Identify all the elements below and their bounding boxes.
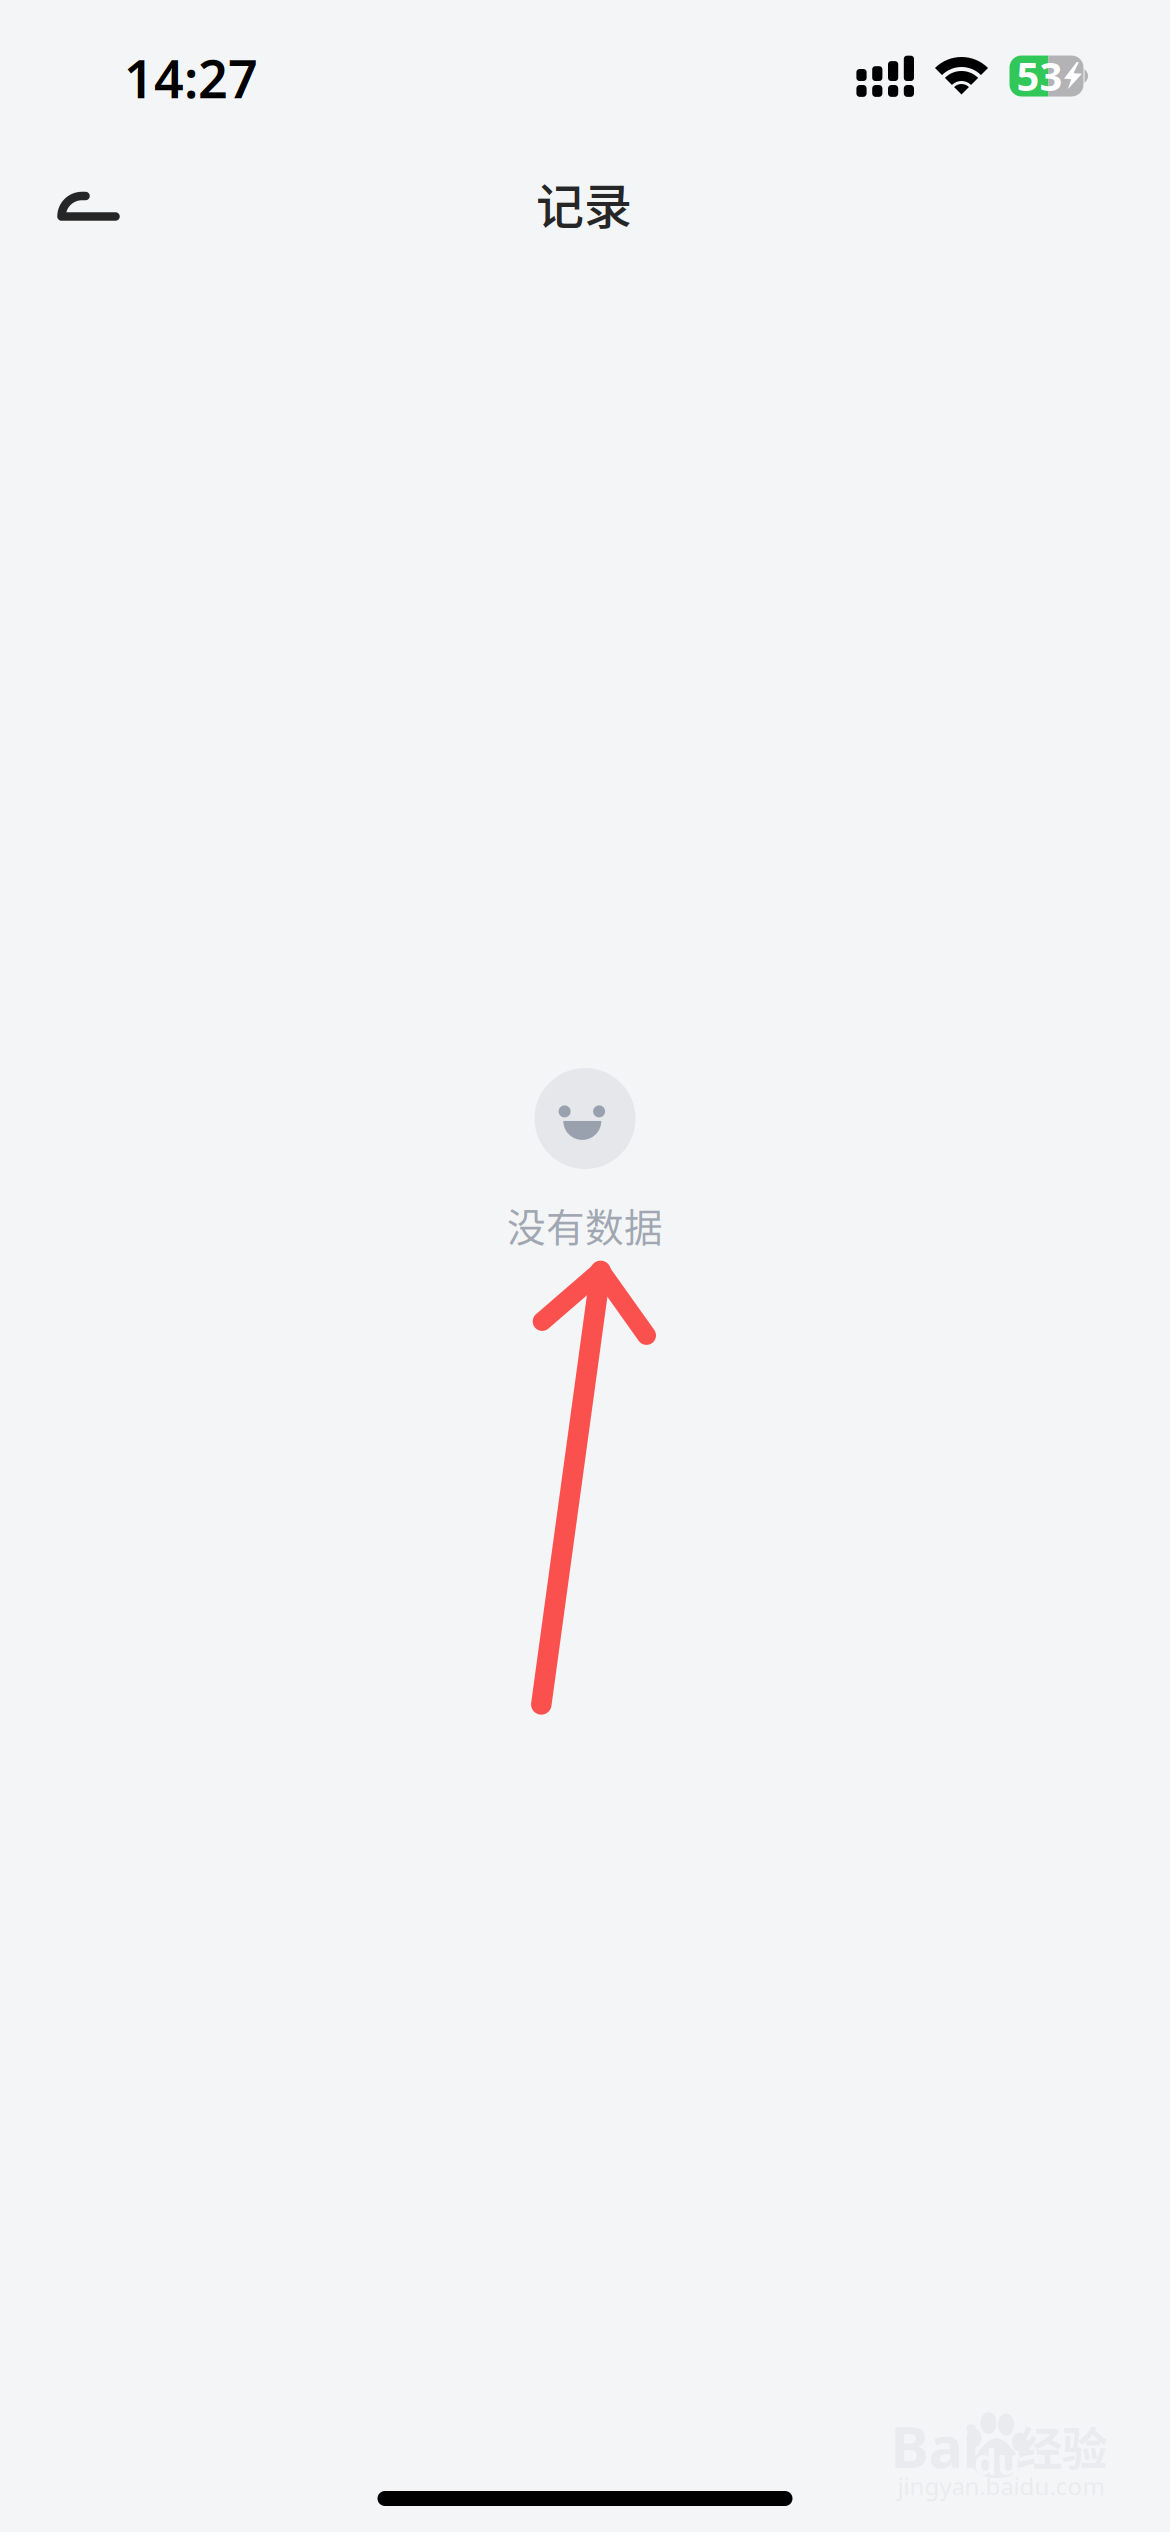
staticText: 14:27	[124, 43, 258, 113]
button[interactable]: Back	[34, 156, 142, 252]
staticText: 没有数据	[507, 1197, 663, 1253]
staticText: 经验	[1017, 2413, 1107, 2479]
staticText: Bai	[890, 2408, 979, 2484]
staticText: du	[974, 2437, 1020, 2485]
staticText: 53	[1016, 49, 1062, 102]
staticText: 记录	[536, 168, 632, 238]
staticText: jingyan.baidu.com	[897, 2470, 1104, 2502]
